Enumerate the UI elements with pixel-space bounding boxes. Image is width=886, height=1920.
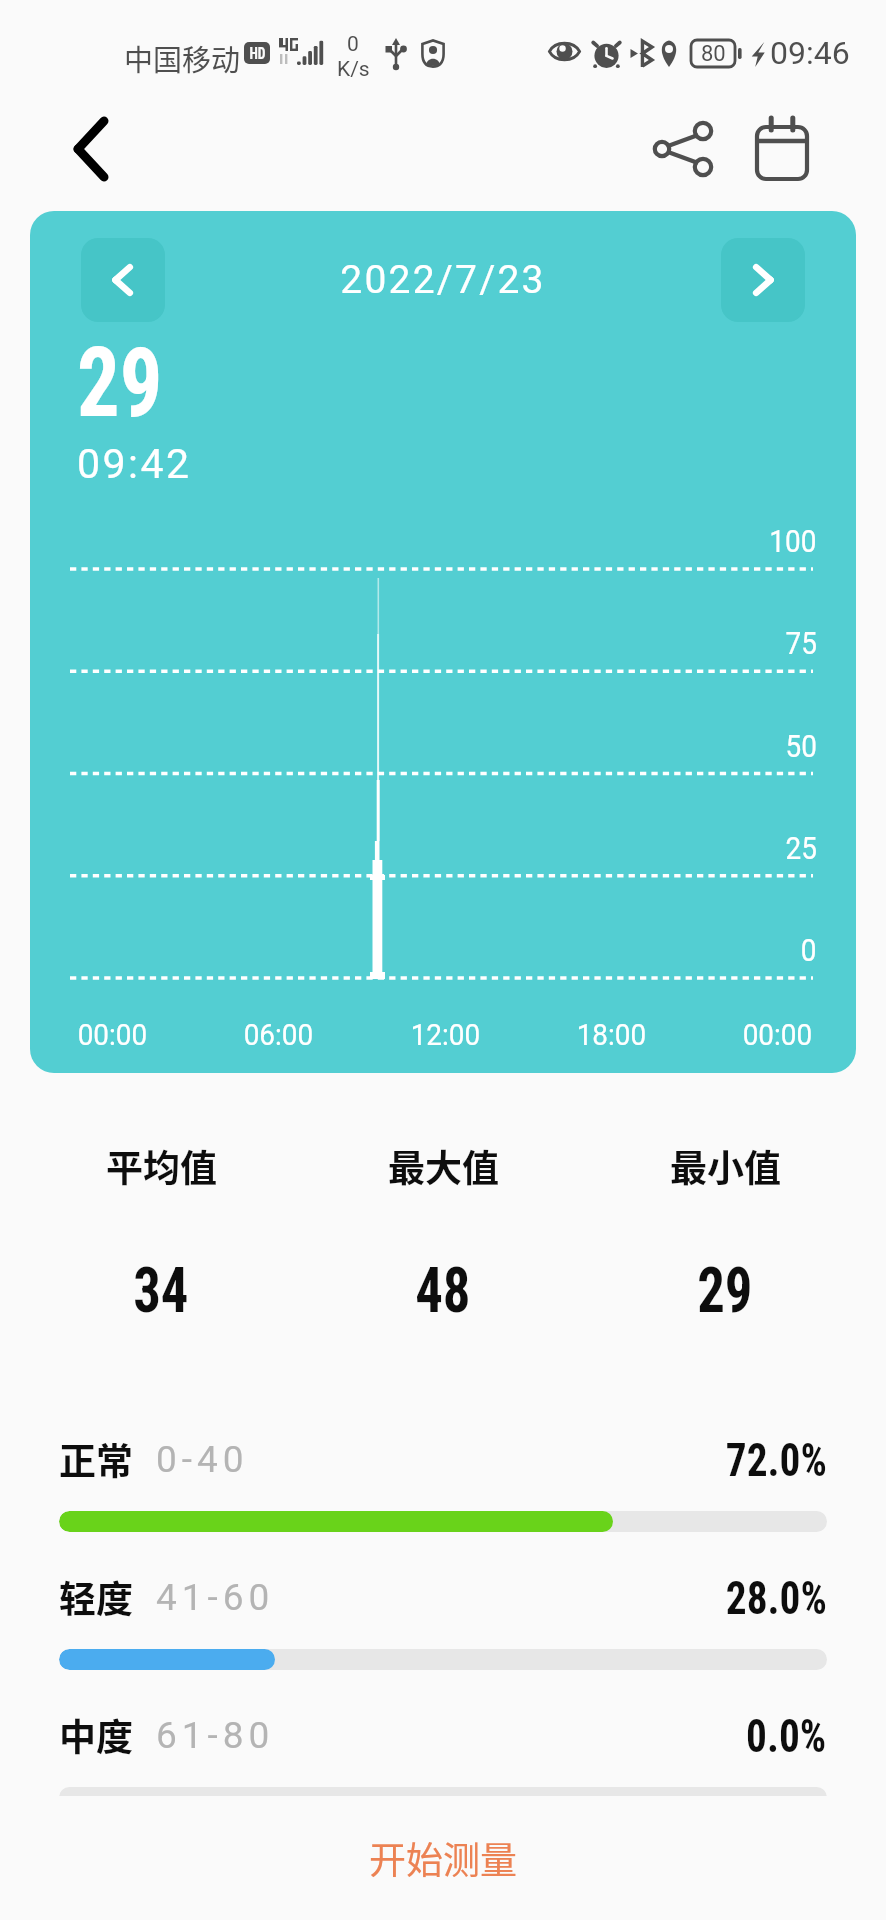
staticText: K/s (337, 57, 370, 82)
staticText: 0 (347, 32, 359, 57)
staticText: 09:46 (770, 34, 850, 72)
staticText: 00:00 (743, 1017, 812, 1052)
staticText: 29 (77, 327, 163, 440)
staticText: 0.0% (746, 1708, 827, 1763)
staticText: 75 (785, 625, 817, 661)
staticText: 34 (133, 1254, 189, 1328)
staticText: HD (249, 44, 266, 63)
staticText: 开始测量 (369, 1831, 517, 1885)
button[interactable]: Calendar (737, 104, 827, 194)
staticText: 25 (785, 830, 817, 866)
button[interactable]: Back (46, 104, 136, 194)
staticText: 80 (701, 41, 726, 67)
button[interactable]: 中度 (59, 1706, 827, 1808)
staticText: 41-60 (156, 1576, 275, 1619)
staticText: 09:42 (77, 440, 192, 488)
staticText: 轻度 (59, 1570, 133, 1624)
staticText: 29 (697, 1254, 753, 1328)
staticText: 0-40 (156, 1438, 249, 1481)
staticText: 72.0% (726, 1432, 827, 1487)
staticText: 最小值 (670, 1139, 781, 1193)
staticText: 12:00 (411, 1017, 480, 1052)
staticText: 中国移动 (124, 37, 241, 79)
staticText: 18:00 (577, 1017, 646, 1052)
staticText: 平均值 (106, 1139, 217, 1193)
staticText: 06:00 (244, 1017, 313, 1052)
staticText: 正常 (59, 1432, 133, 1486)
button[interactable]: Next day (721, 238, 805, 322)
staticText: 0 (801, 932, 817, 968)
staticText: 48 (415, 1254, 471, 1328)
button[interactable]: 开始测量 (0, 1808, 886, 1908)
button[interactable]: 轻度 (59, 1568, 827, 1670)
button[interactable]: 正常 (59, 1430, 827, 1532)
staticText: 50 (785, 728, 817, 764)
staticText: 2022/7/23 (30, 257, 856, 303)
staticText: 100 (769, 523, 817, 559)
button[interactable]: Share (638, 104, 728, 194)
staticText: 00:00 (78, 1017, 147, 1052)
staticText: 最大值 (388, 1139, 499, 1193)
staticText: 中度 (59, 1708, 133, 1762)
staticText: 61-80 (156, 1714, 275, 1757)
button[interactable]: Previous day (81, 238, 165, 322)
staticText: 28.0% (726, 1570, 827, 1625)
